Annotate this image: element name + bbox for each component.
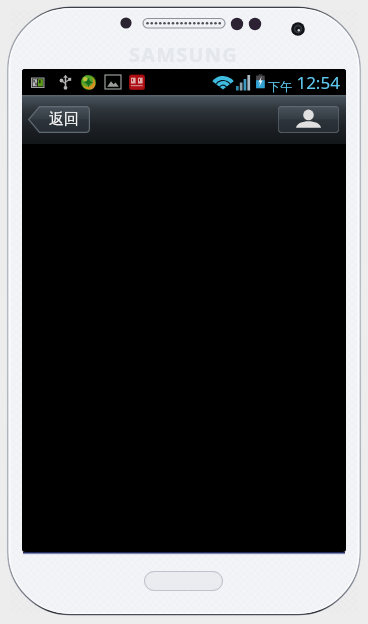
staticText: 返回: [49, 110, 79, 129]
button[interactable]: Account: [278, 106, 339, 133]
staticText: 12:54: [292, 71, 340, 94]
staticText: 下午: [268, 79, 292, 94]
staticText: SAMSUNG: [129, 41, 238, 68]
button[interactable]: 返回: [28, 106, 90, 133]
